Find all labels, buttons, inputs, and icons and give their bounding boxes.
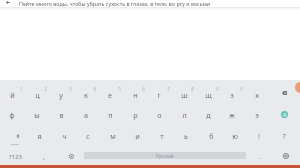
staticText: и bbox=[135, 131, 140, 141]
staticText: ш bbox=[181, 90, 188, 100]
staticText: е bbox=[108, 90, 112, 100]
button[interactable]: у bbox=[49, 80, 73, 100]
button[interactable]: Русский bbox=[84, 152, 246, 159]
button[interactable]: Shift bbox=[3, 121, 27, 141]
staticText: ф bbox=[9, 110, 15, 120]
staticText: т bbox=[160, 131, 164, 141]
staticText: н bbox=[133, 90, 138, 100]
staticText: к bbox=[84, 90, 88, 100]
staticText: ж bbox=[229, 110, 235, 120]
staticText: 8 bbox=[191, 86, 194, 92]
staticText: у bbox=[59, 90, 63, 100]
staticText: й bbox=[10, 90, 15, 100]
staticText: 0 bbox=[240, 86, 243, 92]
staticText: 7 bbox=[167, 86, 170, 92]
staticText: ! bbox=[258, 131, 260, 141]
button[interactable]: а bbox=[74, 100, 98, 120]
staticText: ы bbox=[34, 110, 40, 120]
button[interactable]: г bbox=[147, 80, 171, 100]
staticText: л bbox=[182, 110, 187, 120]
button[interactable]: я bbox=[27, 121, 51, 141]
staticText: Пейте много воды, чтобы убрать сухость в… bbox=[19, 0, 211, 7]
staticText: 6 bbox=[142, 86, 145, 92]
staticText: о bbox=[157, 110, 162, 120]
button[interactable]: Back bbox=[0, 0, 15, 4]
staticText: . bbox=[259, 151, 261, 161]
button[interactable]: ! bbox=[247, 121, 271, 141]
staticText: ц bbox=[35, 90, 40, 100]
button[interactable]: ф bbox=[0, 100, 24, 120]
button[interactable]: в bbox=[49, 100, 73, 120]
button[interactable]: Change language bbox=[274, 141, 298, 161]
button[interactable]: о bbox=[147, 100, 171, 120]
button[interactable]: т bbox=[150, 121, 174, 141]
button[interactable]: ?123 bbox=[3, 141, 27, 161]
staticText: , bbox=[43, 151, 45, 161]
button[interactable]: н bbox=[123, 80, 147, 100]
staticText: 4 bbox=[93, 86, 96, 92]
button[interactable]: м bbox=[101, 121, 125, 141]
staticText: ?123 bbox=[9, 153, 22, 161]
button[interactable]: ц bbox=[25, 80, 49, 100]
staticText: ? bbox=[282, 131, 286, 141]
button[interactable]: Backspace bbox=[272, 80, 297, 100]
button[interactable]: Search bbox=[272, 100, 297, 120]
button[interactable]: ы bbox=[25, 100, 49, 120]
button[interactable]: л bbox=[172, 100, 196, 120]
staticText: г bbox=[157, 90, 161, 100]
staticText: ч bbox=[62, 131, 67, 141]
staticText: п bbox=[108, 110, 113, 120]
button[interactable]: ч bbox=[52, 121, 76, 141]
button[interactable]: ж bbox=[220, 100, 244, 120]
staticText: 9 bbox=[216, 86, 219, 92]
staticText: а bbox=[84, 110, 88, 120]
button[interactable]: ? bbox=[272, 121, 296, 141]
button[interactable]: е bbox=[98, 80, 122, 100]
staticText: Русский bbox=[156, 153, 174, 159]
button[interactable]: х bbox=[245, 80, 269, 100]
button[interactable]: д bbox=[196, 100, 220, 120]
button[interactable]: ю bbox=[223, 121, 247, 141]
staticText: я bbox=[37, 131, 42, 141]
button[interactable]: Add bbox=[295, 82, 300, 93]
button[interactable]: з bbox=[220, 80, 244, 100]
button[interactable]: с bbox=[76, 121, 100, 141]
button[interactable]: ь bbox=[174, 121, 198, 141]
staticText: д bbox=[206, 110, 211, 120]
staticText: в bbox=[59, 110, 64, 120]
button[interactable]: й bbox=[0, 80, 24, 100]
staticText: ь bbox=[184, 131, 188, 141]
staticText: м bbox=[110, 131, 116, 141]
staticText: б bbox=[209, 131, 214, 141]
staticText: щ bbox=[205, 90, 212, 100]
button[interactable]: Emoji bbox=[59, 141, 83, 161]
staticText: 1 bbox=[20, 86, 23, 92]
button[interactable]: и bbox=[125, 121, 149, 141]
button[interactable]: к bbox=[74, 80, 98, 100]
button[interactable]: р bbox=[123, 100, 147, 120]
staticText: 5 bbox=[118, 86, 121, 92]
button[interactable]: п bbox=[98, 100, 122, 120]
button[interactable]: э bbox=[245, 100, 269, 120]
staticText: р bbox=[133, 110, 138, 120]
staticText: 3 bbox=[69, 86, 72, 92]
button[interactable]: , bbox=[32, 141, 56, 161]
button[interactable]: щ bbox=[196, 80, 220, 100]
staticText: э bbox=[255, 110, 259, 120]
staticText: х bbox=[255, 90, 259, 100]
staticText: 2 bbox=[44, 86, 47, 92]
staticText: з bbox=[230, 90, 234, 100]
staticText: ю bbox=[232, 131, 238, 141]
button[interactable]: б bbox=[199, 121, 223, 141]
button[interactable]: ш bbox=[172, 80, 196, 100]
staticText: с bbox=[86, 131, 90, 141]
